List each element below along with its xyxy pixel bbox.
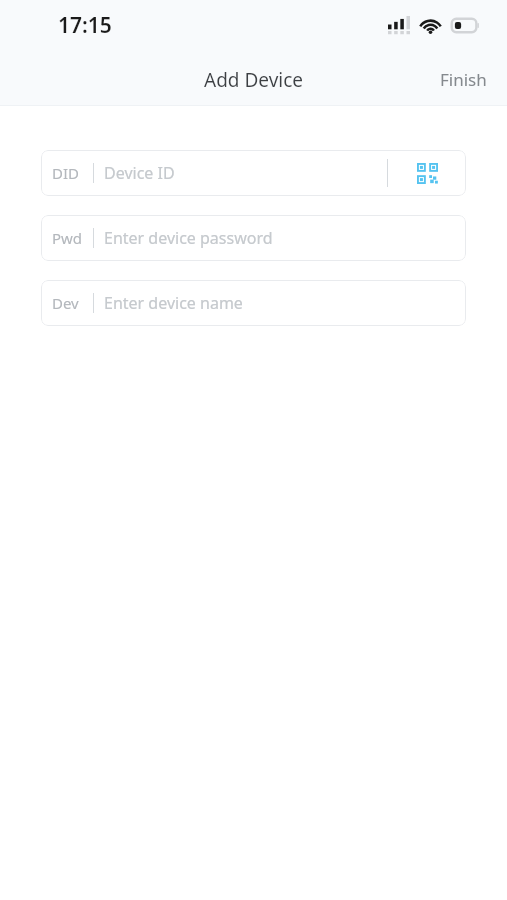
staticText: DID [52, 163, 79, 183]
button[interactable]: DID [41, 150, 466, 196]
staticText: Enter device password [104, 227, 273, 249]
staticText: Pwd [52, 228, 83, 248]
staticText: 17:15 [58, 11, 112, 40]
staticText: Enter device name [104, 292, 243, 314]
button[interactable]: Finish [420, 57, 507, 102]
button[interactable]: Scan QR code [388, 150, 466, 196]
staticText: Add Device [204, 67, 304, 93]
button[interactable]: Pwd [41, 215, 466, 261]
staticText: Dev [52, 293, 79, 313]
staticText: Device ID [104, 162, 175, 184]
staticText: Finish [440, 68, 487, 91]
button[interactable]: Dev [41, 280, 466, 326]
